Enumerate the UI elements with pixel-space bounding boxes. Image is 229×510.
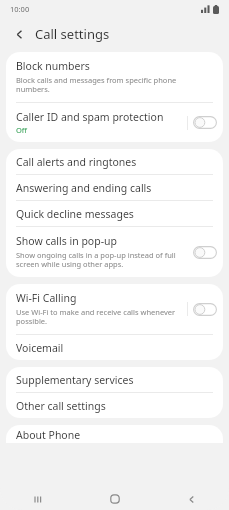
button[interactable]: Back <box>153 488 229 510</box>
button[interactable]: Call alerts and ringtones <box>6 149 223 174</box>
button[interactable]: Other call settings <box>6 393 223 418</box>
button[interactable]: Back <box>9 24 29 44</box>
staticText: Block calls and messages from specific p… <box>16 75 177 95</box>
other: Show calls in pop-up toggle <box>193 246 217 259</box>
staticText: Use Wi-Fi to make and receive calls when… <box>16 307 176 327</box>
staticText: Show ongoing calls in a pop-up instead o… <box>16 250 176 270</box>
button[interactable]: Wi-Fi Calling <box>6 284 223 334</box>
button[interactable]: Answering and ending calls <box>6 175 223 200</box>
button[interactable]: Voicemail <box>6 335 223 360</box>
staticText: 10:00 <box>10 4 30 14</box>
staticText: Quick decline messages <box>16 207 134 221</box>
other: Wi-Fi Calling toggle <box>193 303 217 316</box>
button[interactable]: Supplementary services <box>6 367 223 392</box>
button[interactable]: Show calls in pop-up <box>6 227 223 277</box>
staticText: Call alerts and ringtones <box>16 155 137 169</box>
button[interactable]: Home <box>77 488 153 510</box>
staticText: Call settings <box>35 25 110 43</box>
staticText: Caller ID and spam protection <box>16 110 164 124</box>
button[interactable]: Caller ID and spam protection <box>6 103 223 142</box>
staticText: Other call settings <box>16 399 106 413</box>
staticText: About Phone <box>16 428 81 442</box>
staticText: Supplementary services <box>16 373 134 387</box>
staticText: Show calls in pop-up <box>16 234 118 248</box>
staticText: Block numbers <box>16 59 90 73</box>
button[interactable]: Block numbers <box>6 52 223 102</box>
staticText: Answering and ending calls <box>16 181 152 195</box>
button[interactable]: Recent apps <box>0 488 77 510</box>
staticText: Voicemail <box>16 341 64 355</box>
staticText: Wi-Fi Calling <box>16 291 77 305</box>
staticText: Off <box>16 125 28 135</box>
button[interactable]: About Phone <box>6 425 223 443</box>
other: Caller ID toggle <box>193 116 217 129</box>
button[interactable]: Quick decline messages <box>6 201 223 226</box>
